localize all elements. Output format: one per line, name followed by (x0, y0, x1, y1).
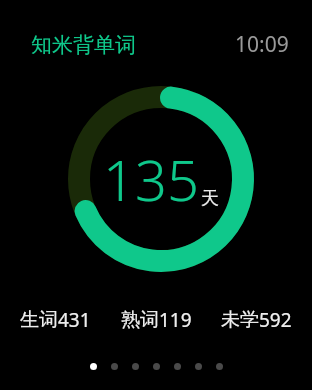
staticText: 592 (259, 307, 292, 333)
staticText: 119 (159, 307, 192, 333)
button[interactable]: 熟词 (119, 303, 194, 337)
button[interactable]: 生词 (18, 303, 93, 337)
button[interactable]: Study streak 135 days progress (68, 86, 254, 272)
staticText: 10:09 (235, 30, 289, 59)
staticText: 熟词 (121, 308, 159, 332)
staticText: 431 (58, 307, 91, 333)
staticText: 生词 (20, 308, 58, 332)
staticText: 知米背单词 (31, 32, 136, 58)
staticText: 未学 (221, 308, 259, 332)
staticText: 天 (201, 187, 219, 210)
button[interactable]: 未学 (219, 303, 294, 337)
staticText: 135 (103, 141, 199, 217)
